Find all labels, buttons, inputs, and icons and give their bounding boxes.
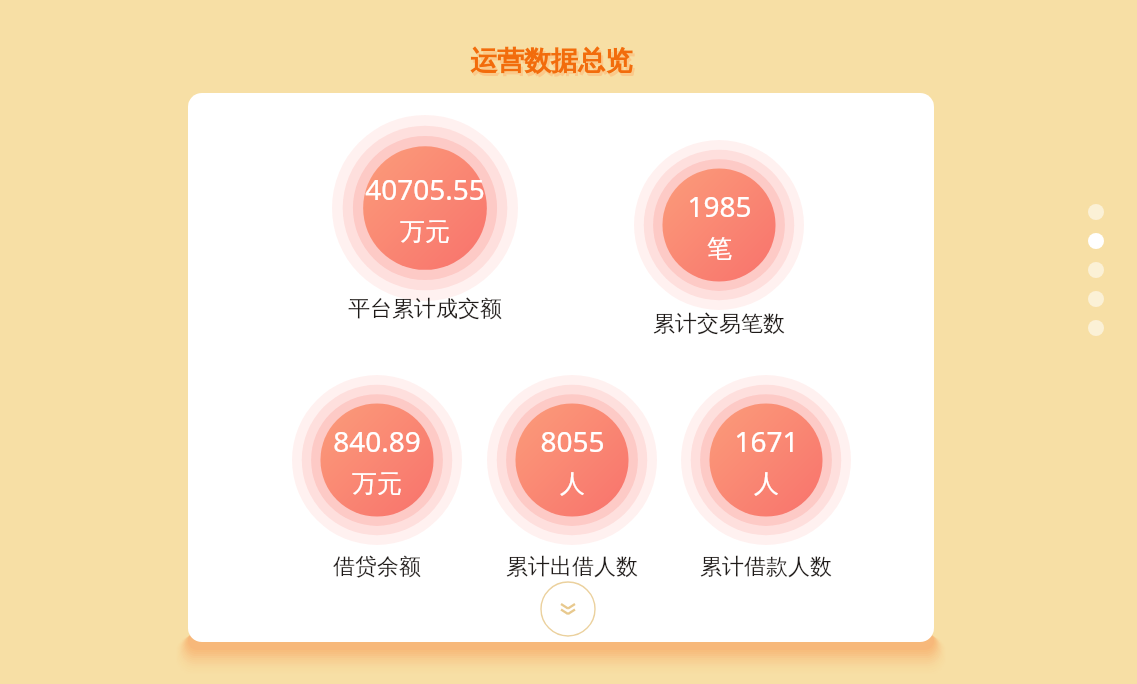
- button[interactable]: 向下滚动: [540, 581, 596, 637]
- button[interactable]: 40705.55: [332, 115, 518, 301]
- button[interactable]: 8055: [487, 375, 657, 545]
- staticText: 40705.55: [365, 170, 485, 208]
- staticText: 累计借款人数: [681, 553, 851, 623]
- staticText: 1985: [687, 187, 752, 225]
- staticText: 840.89: [333, 422, 421, 460]
- staticText: 借贷余额: [292, 553, 462, 623]
- staticText: 人: [754, 468, 779, 499]
- button[interactable]: 840.89: [292, 375, 462, 545]
- staticText: 累计交易笔数: [634, 310, 804, 380]
- button[interactable]: 1985: [634, 140, 804, 310]
- staticText: 累计出借人数: [487, 553, 657, 623]
- button[interactable]: 1671: [681, 375, 851, 545]
- button[interactable]: 页面指示器: [1086, 200, 1110, 350]
- staticText: 万元: [352, 468, 402, 499]
- staticText: 运营数据总览: [472, 47, 634, 81]
- staticText: 运营数据总览: [470, 44, 632, 78]
- staticText: 人: [560, 468, 585, 499]
- staticText: 平台累计成交额: [340, 295, 510, 365]
- staticText: 8055: [540, 422, 605, 460]
- staticText: 1671: [734, 422, 799, 460]
- staticText: 笔: [707, 233, 732, 264]
- staticText: 万元: [400, 216, 450, 247]
